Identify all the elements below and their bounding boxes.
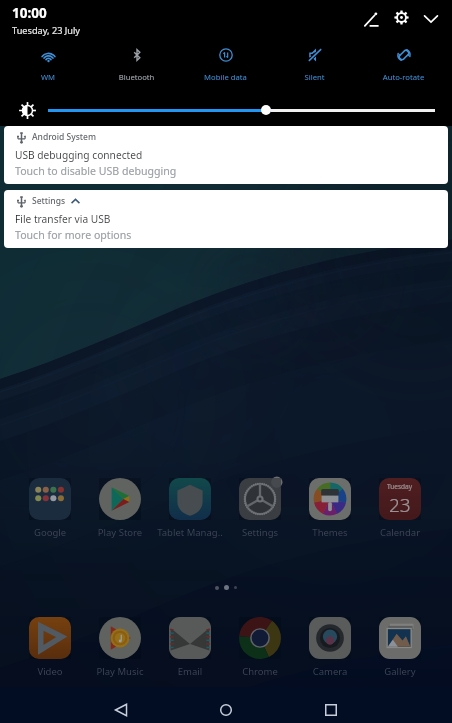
staticText: Bluetooth — [92, 72, 181, 82]
staticText: Android System — [32, 131, 97, 143]
button[interactable]: Google — [15, 478, 85, 539]
button[interactable]: Mobile data — [181, 40, 270, 88]
button[interactable]: Collapse — [416, 4, 446, 34]
button[interactable]: Home — [181, 687, 271, 723]
button[interactable]: Edit — [356, 5, 386, 35]
staticText: Silent — [270, 72, 359, 82]
button[interactable]: Settings — [4, 190, 448, 248]
button[interactable]: Auto-rotate — [359, 40, 448, 88]
staticText: Chrome — [225, 665, 295, 678]
button[interactable]: Camera — [295, 617, 365, 678]
staticText: Play Store — [85, 526, 155, 539]
staticText: 10:00 — [12, 4, 47, 22]
staticText: Gallery — [365, 665, 435, 678]
staticText: Settings — [225, 526, 295, 539]
staticText: Tuesday, 23 July — [12, 24, 81, 37]
staticText: Auto-rotate — [359, 72, 448, 82]
button[interactable]: Settings — [225, 478, 295, 539]
staticText: Settings — [32, 195, 66, 207]
button[interactable]: Email — [155, 617, 225, 678]
button[interactable]: Play Music — [85, 617, 155, 678]
button[interactable]: Chrome — [225, 617, 295, 678]
button[interactable]: Tablet Manag.. — [155, 478, 225, 539]
staticText: Themes — [295, 526, 365, 539]
staticText: 23 — [389, 492, 411, 518]
button[interactable]: Tuesday — [365, 478, 435, 539]
staticText: Calendar — [365, 526, 435, 539]
button[interactable]: Back — [76, 687, 166, 723]
button[interactable]: Silent — [270, 40, 359, 88]
staticText: Google — [15, 526, 85, 539]
staticText: Play Music — [85, 665, 155, 678]
staticText: Touch to disable USB debugging — [15, 164, 177, 178]
staticText: Tablet Manag.. — [155, 526, 225, 539]
staticText: WM — [4, 72, 92, 82]
staticText: Mobile data — [181, 72, 270, 82]
button[interactable]: Bluetooth — [92, 40, 181, 88]
button[interactable]: Settings — [386, 2, 416, 32]
button[interactable]: Themes — [295, 478, 365, 539]
button[interactable]: Gallery — [365, 617, 435, 678]
button[interactable]: Play Store — [85, 478, 155, 539]
button[interactable]: Brightness — [48, 100, 435, 120]
button[interactable]: WM — [4, 40, 92, 88]
staticText: Video — [15, 665, 85, 678]
staticText: File transfer via USB — [15, 212, 111, 226]
button[interactable]: Video — [15, 617, 85, 678]
button[interactable]: Android System — [4, 126, 448, 184]
staticText: Tuesday — [387, 482, 413, 491]
staticText: Touch for more options — [15, 228, 132, 242]
staticText: Camera — [295, 665, 365, 678]
staticText: USB debugging connected — [15, 148, 143, 162]
button[interactable]: Recents — [286, 687, 376, 723]
staticText: Email — [155, 665, 225, 678]
